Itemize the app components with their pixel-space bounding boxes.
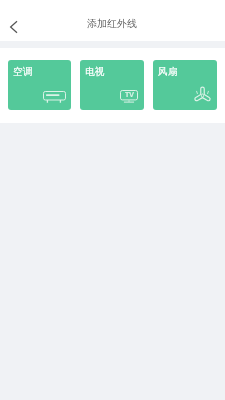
staticText: 风扇: [158, 66, 178, 78]
button[interactable]: 空调: [8, 60, 71, 110]
staticText: TV: [125, 89, 134, 99]
staticText: 电视: [85, 66, 105, 78]
button[interactable]: Back: [0, 17, 26, 37]
staticText: 空调: [13, 66, 33, 78]
button[interactable]: 电视: [80, 60, 144, 110]
staticText: 添加红外线: [87, 17, 137, 30]
button[interactable]: 风扇: [153, 60, 217, 110]
